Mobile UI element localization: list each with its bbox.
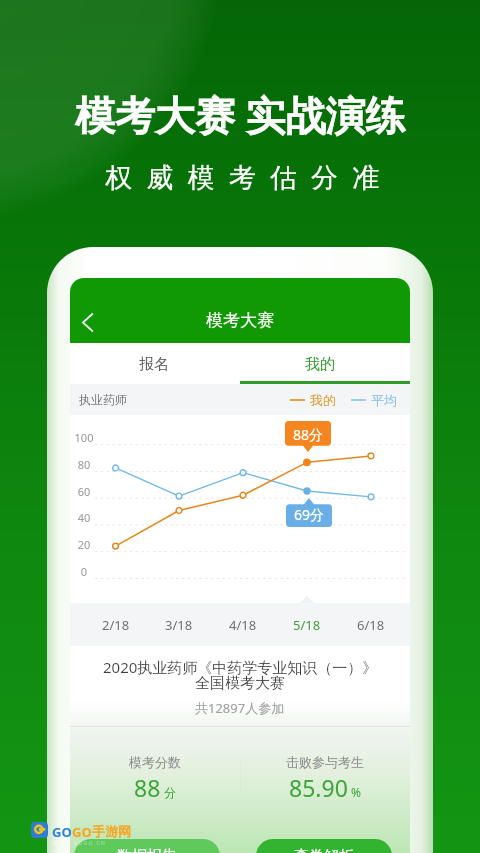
staticText: 平均 xyxy=(371,392,397,408)
button[interactable]: 5/18 xyxy=(281,603,333,646)
staticText: 3/18 xyxy=(165,616,193,634)
button[interactable]: 4/18 xyxy=(217,603,269,646)
staticText: 我的 xyxy=(310,392,336,408)
staticText: 40 xyxy=(70,510,98,525)
staticText: 模考分数 xyxy=(129,754,181,770)
staticText: % xyxy=(351,784,361,800)
button[interactable]: 2/18 xyxy=(90,603,142,646)
staticText: 查卷解析 xyxy=(294,847,354,853)
staticText: 0 xyxy=(70,564,98,579)
staticText: 模考大赛 xyxy=(206,310,274,331)
staticText: 分 xyxy=(164,785,176,800)
staticText: 2/18 xyxy=(102,616,130,634)
staticText: 20 xyxy=(70,537,98,552)
staticText: 手游网 xyxy=(92,823,131,839)
button[interactable]: 数据报告 xyxy=(74,839,220,853)
staticText: W W W . G O G O . C N xyxy=(53,840,105,847)
staticText: 5/18 xyxy=(293,616,321,634)
staticText: 88 xyxy=(134,772,161,803)
staticText: 60 xyxy=(70,484,98,499)
staticText: 击败参与考生 xyxy=(286,754,364,770)
staticText: 69分 xyxy=(294,505,325,524)
button[interactable]: 报名 xyxy=(70,343,240,384)
staticText: 模考大赛 实战演练 xyxy=(75,87,406,142)
staticText: 全国模考大赛 xyxy=(195,674,285,693)
button[interactable]: Back xyxy=(70,311,107,333)
staticText: 88分 xyxy=(293,425,324,444)
button[interactable]: 3/18 xyxy=(153,603,205,646)
staticText: GO xyxy=(72,823,92,841)
staticText: 我的 xyxy=(305,355,335,374)
button[interactable]: 查卷解析 xyxy=(256,839,392,853)
staticText: 执业药师 xyxy=(79,392,127,407)
staticText: 85.90 xyxy=(289,772,348,803)
staticText: 2020执业药师《中药学专业知识（一）》 xyxy=(103,657,378,677)
staticText: 权 威 模 考 估 分 准 xyxy=(105,158,383,195)
button[interactable]: 6/18 xyxy=(345,603,397,646)
staticText: 100 xyxy=(70,430,98,445)
staticText: 4/18 xyxy=(229,616,257,634)
button[interactable]: 我的 xyxy=(240,343,410,384)
staticText: 6/18 xyxy=(357,616,385,634)
staticText: 数据报告 xyxy=(117,847,177,853)
staticText: GO xyxy=(52,823,72,841)
staticText: 80 xyxy=(70,457,98,472)
staticText: 报名 xyxy=(139,355,169,374)
staticText: 共12897人参加 xyxy=(195,699,285,717)
